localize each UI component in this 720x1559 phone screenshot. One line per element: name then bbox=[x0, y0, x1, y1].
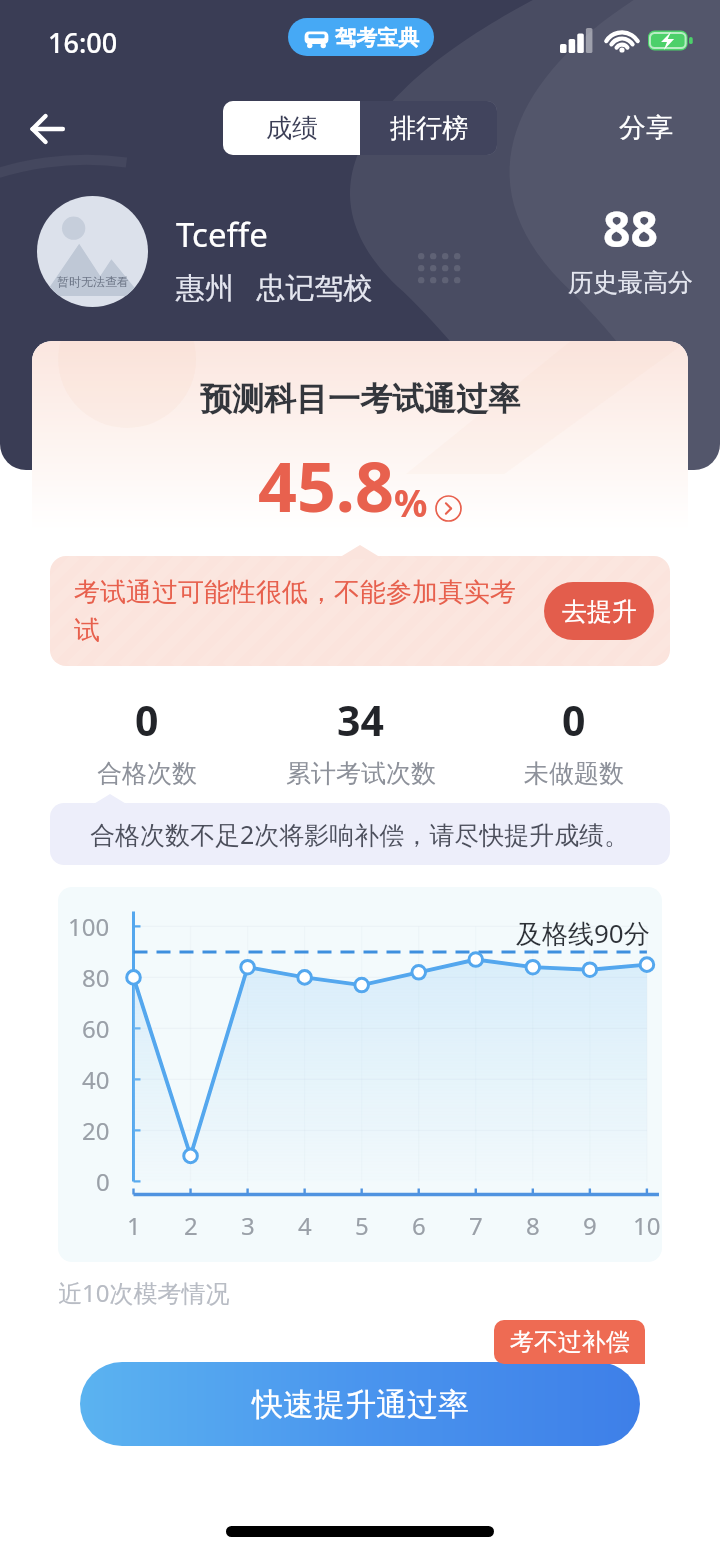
staticText: 考试通过可能性很低，不能参加真实考试 bbox=[74, 576, 534, 647]
staticText: 4 bbox=[298, 1209, 312, 1242]
staticText: 历史最高分 bbox=[568, 267, 693, 298]
button[interactable]: 分享 bbox=[594, 100, 698, 156]
staticText: 累计考试次数 bbox=[286, 758, 436, 789]
button[interactable]: Avatar bbox=[37, 196, 148, 307]
button[interactable]: 排行榜 bbox=[360, 101, 497, 155]
button[interactable]: 0 bbox=[40, 692, 254, 789]
staticText: 0 bbox=[562, 692, 586, 748]
staticText: 0 bbox=[96, 1165, 110, 1198]
button[interactable]: 去提升 bbox=[544, 582, 654, 640]
staticText: 快速提升通过率 bbox=[252, 1385, 469, 1424]
staticText: 近10次模考情况 bbox=[58, 1276, 230, 1309]
staticText: 3 bbox=[241, 1209, 255, 1242]
staticText: 20 bbox=[82, 1114, 110, 1147]
staticText: 去提升 bbox=[562, 596, 637, 627]
staticText: 80 bbox=[82, 961, 110, 994]
button[interactable]: 成绩 bbox=[223, 101, 360, 155]
staticText: 分享 bbox=[619, 111, 673, 145]
staticText: 合格次数 bbox=[97, 758, 197, 789]
staticText: 9 bbox=[583, 1209, 597, 1242]
staticText: Tceffe bbox=[176, 212, 268, 257]
button[interactable]: 快速提升通过率 bbox=[80, 1362, 640, 1446]
staticText: 排行榜 bbox=[390, 112, 468, 145]
staticText: % bbox=[394, 477, 428, 527]
staticText: 6 bbox=[412, 1209, 426, 1242]
staticText: 惠州 忠记驾校 bbox=[176, 267, 373, 307]
button[interactable]: App logo bbox=[288, 18, 434, 56]
staticText: 16:00 bbox=[48, 24, 118, 61]
staticText: 34 bbox=[337, 692, 384, 748]
staticText: 2 bbox=[184, 1209, 198, 1242]
staticText: 40 bbox=[82, 1063, 110, 1096]
button[interactable]: Back bbox=[16, 98, 78, 160]
staticText: 100 bbox=[68, 910, 110, 943]
staticText: 驾考宝典 bbox=[335, 25, 419, 51]
staticText: 60 bbox=[82, 1012, 110, 1045]
staticText: 成绩 bbox=[266, 112, 318, 145]
staticText: 预测科目一考试通过率 bbox=[32, 379, 688, 419]
button[interactable]: 34 bbox=[254, 692, 467, 789]
staticText: 未做题数 bbox=[524, 758, 624, 789]
button[interactable]: 0 bbox=[467, 692, 680, 789]
staticText: 8 bbox=[526, 1209, 540, 1242]
button[interactable]: 45.8 bbox=[32, 439, 688, 532]
staticText: 合格次数不足2次将影响补偿，请尽快提升成绩。 bbox=[90, 817, 630, 851]
staticText: 考不过补偿 bbox=[510, 1327, 630, 1357]
staticText: 45.8 bbox=[258, 439, 394, 532]
staticText: 88 bbox=[603, 196, 658, 261]
staticText: 5 bbox=[355, 1209, 369, 1242]
staticText: 1 bbox=[127, 1209, 141, 1242]
staticText: 暂时无法查看 bbox=[57, 274, 129, 289]
staticText: 10 bbox=[633, 1209, 661, 1242]
staticText: 及格线90分 bbox=[516, 915, 650, 951]
staticText: 7 bbox=[469, 1209, 483, 1242]
staticText: 0 bbox=[135, 692, 159, 748]
button[interactable]: 考不过补偿 bbox=[494, 1320, 645, 1364]
